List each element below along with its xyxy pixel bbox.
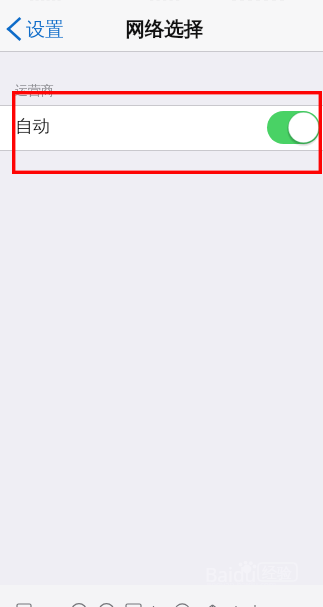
staticText: 运营商 [15, 82, 54, 98]
button[interactable]: 自动 [0, 105, 323, 151]
button[interactable]: Back [10, 585, 40, 607]
button[interactable]: Tabs [146, 585, 172, 607]
button[interactable]: Share [200, 585, 228, 607]
button[interactable]: 设置 [0, 11, 74, 47]
button[interactable]: Forward [65, 585, 94, 607]
button[interactable]: Reload [93, 585, 121, 607]
staticText: 网络选择 [125, 17, 203, 42]
staticText: 设置 [26, 18, 64, 42]
staticText: 自动 [15, 115, 50, 137]
button[interactable]: More [228, 585, 266, 607]
button[interactable]: 自动 开关 [267, 111, 320, 144]
button[interactable]: Home [172, 585, 196, 607]
button[interactable]: Bookmarks [120, 585, 148, 607]
